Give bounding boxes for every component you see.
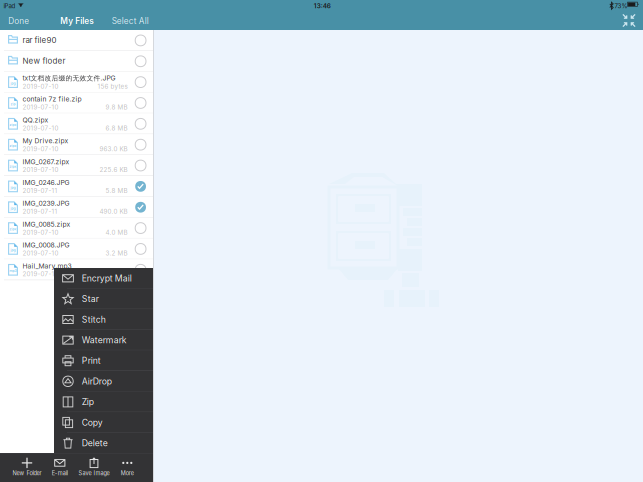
staticText: IMG_0267.zipx (23, 158, 70, 166)
staticText: jpg (10, 185, 15, 189)
button[interactable]: New Folder (5, 457, 49, 479)
staticText: 2019-07-11 (23, 187, 58, 194)
button[interactable]: jpg (0, 72, 153, 93)
button[interactable]: Zip (54, 392, 153, 412)
staticText: Copy (82, 417, 103, 428)
staticText: zipx (9, 227, 16, 231)
button[interactable]: Star (54, 289, 153, 309)
button[interactable]: Print (54, 350, 153, 371)
button[interactable]: Save Image (72, 457, 116, 479)
staticText: Done (8, 16, 29, 26)
staticText: 2019-07-10 (23, 83, 59, 90)
staticText: 9.8 MB (106, 103, 128, 111)
button[interactable]: jpg (0, 176, 153, 197)
staticText: My Files (60, 16, 94, 26)
button[interactable]: mp3 (0, 259, 153, 280)
staticText: IMG_0085.zipx (23, 220, 71, 228)
staticText: Star (82, 294, 99, 304)
button[interactable]: Exit full screen (619, 12, 639, 29)
staticText: New Folder (12, 470, 41, 477)
staticText: 2019-07-10 (23, 229, 59, 236)
staticText: jpg (10, 206, 15, 210)
button[interactable]: E-mail (38, 457, 82, 479)
staticText: 4.0 MB (106, 229, 128, 236)
button[interactable]: Stitch (54, 309, 153, 330)
staticText: 13:46 (314, 2, 331, 10)
staticText: zipx (9, 123, 16, 127)
staticText: New floder (23, 56, 66, 66)
button[interactable]: zipx (0, 113, 153, 134)
staticText: More (121, 470, 134, 477)
staticText: zipx (9, 164, 16, 169)
button[interactable]: Encrypt Mail (54, 268, 153, 289)
button[interactable]: Delete (54, 433, 153, 453)
button[interactable]: More (105, 457, 149, 479)
staticText: My Drive.zipx (23, 137, 69, 145)
staticText: 5.8 MB (106, 187, 128, 194)
staticText: Watermark (82, 335, 127, 345)
button[interactable]: jpg (0, 238, 153, 259)
staticText: jpg (10, 248, 15, 252)
staticText: QQ.zipx (23, 116, 49, 124)
staticText: Hail_Mary.mp3 (23, 262, 72, 270)
staticText: IMG_0239.JPG (23, 199, 70, 207)
staticText: IMG_0008.JPG (23, 241, 70, 249)
staticText: 6.8 MB (106, 124, 128, 132)
staticText: IMG_0246.JPG (23, 178, 70, 187)
staticText: 73% (615, 2, 628, 10)
staticText: Zip (82, 397, 94, 407)
staticText: Print (82, 355, 101, 366)
staticText: Encrypt Mail (82, 273, 132, 284)
button[interactable]: zip (0, 93, 153, 113)
button[interactable]: rar file90 (0, 30, 153, 51)
button[interactable]: New floder (0, 51, 153, 72)
staticText: 156 bytes (98, 83, 128, 90)
staticText: Stitch (82, 314, 106, 325)
button[interactable]: Select All (112, 13, 152, 29)
staticText: zipx (9, 144, 16, 148)
staticText: 2019-07-10 (23, 249, 59, 257)
button[interactable]: zipx (0, 134, 153, 155)
staticText: contain 7z file.zip (23, 95, 82, 103)
staticText: E-mail (52, 470, 68, 477)
button[interactable]: Copy (54, 412, 153, 433)
staticText: 2019-07-10 (23, 145, 59, 153)
staticText: iPad (3, 2, 15, 10)
staticText: 2019-07-11 (23, 208, 58, 215)
staticText: txt文档改后缀的无效文件.JPG (23, 74, 116, 83)
button[interactable]: zipx (0, 155, 153, 176)
staticText: 2019-07-10 (23, 103, 59, 111)
staticText: AirDrop (82, 376, 112, 387)
staticText: rar file90 (23, 35, 57, 45)
staticText: 2019-07-10 (23, 166, 59, 174)
button[interactable]: Watermark (54, 330, 153, 350)
staticText: Delete (82, 438, 108, 448)
button[interactable]: jpg (0, 197, 153, 218)
button[interactable]: zipx (0, 218, 153, 238)
staticText: 225.6 KB (100, 166, 128, 174)
staticText: 3.2 MB (106, 249, 128, 257)
staticText: Select All (112, 16, 149, 26)
staticText: mp3 (9, 269, 16, 273)
staticText: Save Image (78, 470, 109, 477)
staticText: 963.0 KB (100, 145, 128, 153)
button[interactable]: AirDrop (54, 371, 153, 392)
staticText: 2019-07-10 (23, 124, 59, 132)
staticText: jpg (10, 81, 15, 85)
staticText: zip (10, 102, 15, 106)
staticText: 490.0 KB (100, 208, 128, 215)
button[interactable]: Done (8, 13, 38, 29)
staticText: 2019-07-11 (23, 270, 58, 278)
